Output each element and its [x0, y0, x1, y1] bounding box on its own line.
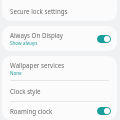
- button[interactable]: Clock style: [2, 81, 117, 101]
- staticText: Roaming clock: [10, 107, 53, 115]
- button[interactable]: Roaming clock toggle: [97, 107, 111, 115]
- button[interactable]: Wallpaper services: [2, 56, 117, 80]
- button[interactable]: Always On Display: [2, 26, 117, 51]
- staticText: Show always: [10, 40, 38, 46]
- button[interactable]: Always On Display toggle: [97, 35, 111, 43]
- staticText: Clock style: [10, 87, 41, 95]
- button[interactable]: Roaming clock: [2, 102, 117, 120]
- staticText: Secure lock settings: [10, 7, 68, 15]
- staticText: None: [10, 70, 22, 76]
- button[interactable]: Secure lock settings: [2, 7, 117, 15]
- staticText: Wallpaper services: [10, 61, 65, 69]
- staticText: Always On Display: [10, 31, 63, 39]
